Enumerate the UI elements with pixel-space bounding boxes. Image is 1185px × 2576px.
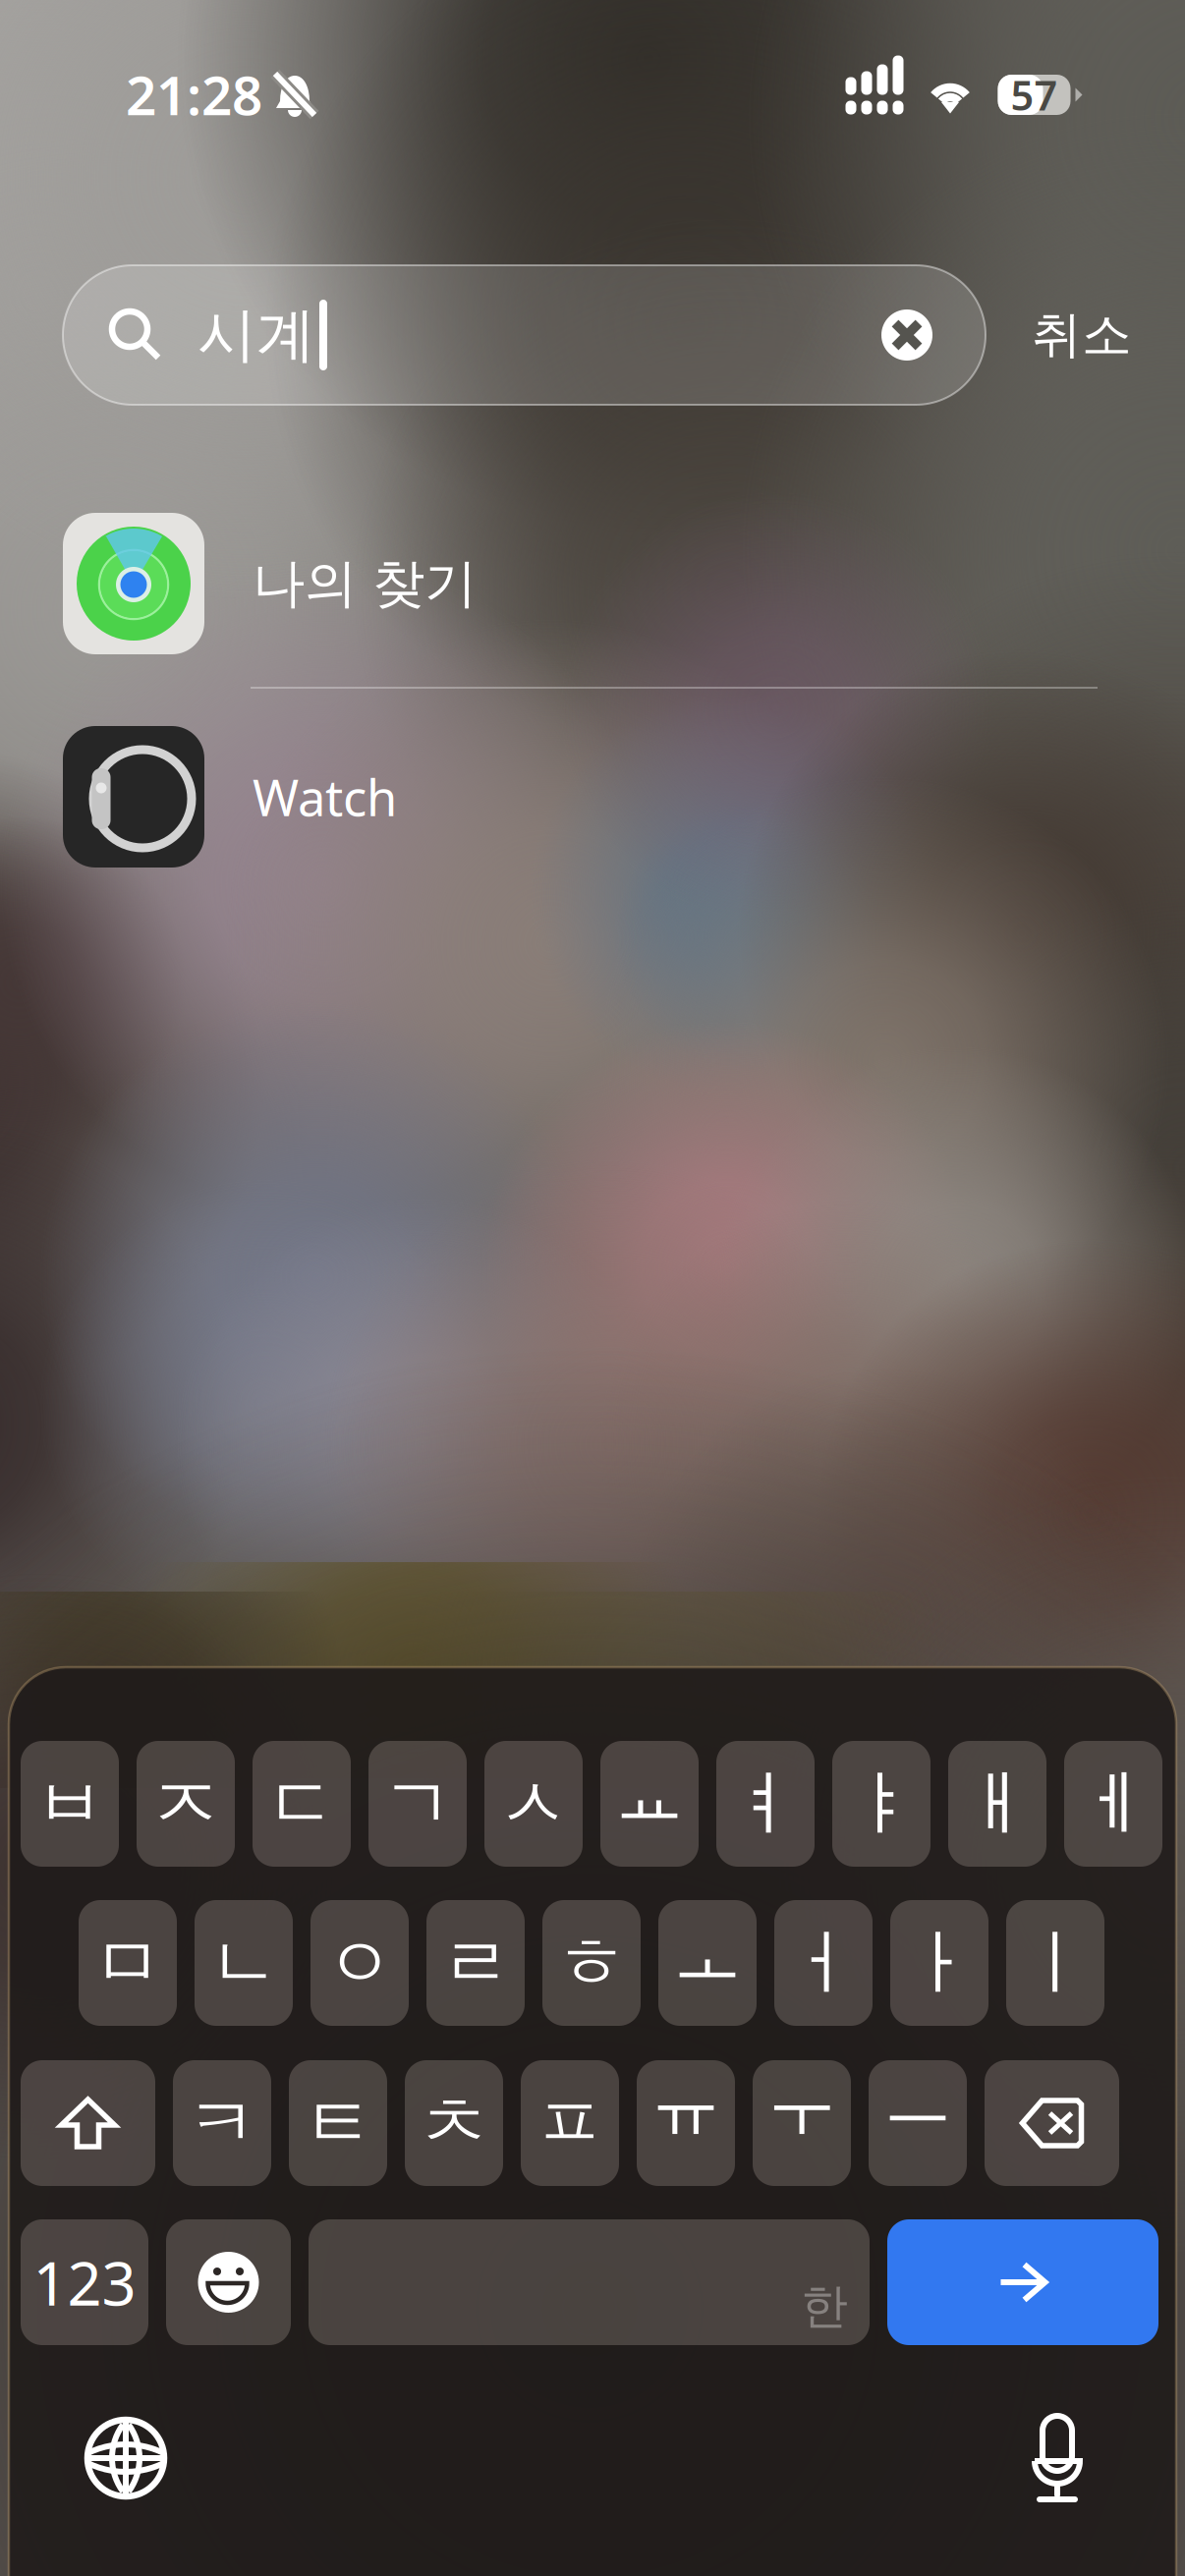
button[interactable]: ㅗ xyxy=(658,1900,757,2026)
button[interactable]: ㅠ xyxy=(637,2060,735,2186)
staticText: 123 xyxy=(33,2242,136,2322)
button[interactable]: ㅐ xyxy=(948,1741,1046,1867)
button[interactable]: Backspace xyxy=(985,2060,1119,2186)
button[interactable]: Emoji keyboard xyxy=(166,2219,291,2345)
button[interactable]: 한 xyxy=(309,2219,870,2345)
staticText: ㅅ xyxy=(498,1760,569,1847)
button[interactable]: ㅁ xyxy=(79,1900,177,2026)
button[interactable]: ㅡ xyxy=(869,2060,967,2186)
staticText: ㅓ xyxy=(788,1920,859,2006)
button[interactable]: ㅑ xyxy=(832,1741,931,1867)
staticText: ㅂ xyxy=(34,1760,105,1847)
button[interactable]: Switch keyboard xyxy=(83,2415,169,2501)
staticText: ㅍ xyxy=(535,2080,605,2167)
staticText: ㅏ xyxy=(904,1920,975,2006)
button[interactable]: ㄱ xyxy=(368,1741,467,1867)
staticText: ㅜ xyxy=(766,2062,837,2149)
button[interactable]: Watch xyxy=(63,709,1185,884)
staticText: ㅑ xyxy=(846,1760,917,1847)
button[interactable]: ㄴ xyxy=(195,1900,293,2026)
button[interactable]: ㅇ xyxy=(310,1900,409,2026)
staticText: 시계 xyxy=(197,299,315,371)
staticText: ㅊ xyxy=(419,2080,489,2167)
button[interactable]: ㅅ xyxy=(484,1741,583,1867)
button[interactable]: ㅛ xyxy=(600,1741,699,1867)
staticText: 취소 xyxy=(1032,304,1132,366)
staticText: 나의 찾기 xyxy=(253,551,477,616)
button[interactable]: ㅔ xyxy=(1064,1741,1162,1867)
button[interactable]: ㅊ xyxy=(405,2060,503,2186)
staticText: ㅗ xyxy=(672,1912,743,1999)
staticText: ㅔ xyxy=(1078,1760,1149,1847)
button[interactable]: ㅋ xyxy=(173,2060,271,2186)
button[interactable]: ㄷ xyxy=(253,1741,351,1867)
staticText: 한 xyxy=(801,2277,848,2335)
staticText: ㅣ xyxy=(1020,1920,1091,2006)
staticText: ㅡ xyxy=(882,2057,953,2144)
button[interactable]: Dictation xyxy=(1028,2413,1087,2503)
staticText: ㅁ xyxy=(92,1920,163,2006)
staticText: ㅕ xyxy=(730,1760,801,1847)
button[interactable]: ㅎ xyxy=(542,1900,641,2026)
button[interactable]: Return xyxy=(887,2219,1158,2345)
staticText: ㅐ xyxy=(962,1760,1033,1847)
staticText: ㅋ xyxy=(187,2080,257,2167)
button[interactable]: ㅏ xyxy=(890,1900,988,2026)
staticText: ㄹ xyxy=(440,1920,511,2006)
staticText: ㅈ xyxy=(150,1760,221,1847)
staticText: ㄷ xyxy=(266,1760,337,1847)
button[interactable]: ㅜ xyxy=(753,2060,851,2186)
staticText: Watch xyxy=(253,764,397,830)
button[interactable]: ㅣ xyxy=(1006,1900,1104,2026)
staticText: ㅇ xyxy=(324,1920,395,2006)
button[interactable]: ㅂ xyxy=(21,1741,119,1867)
staticText: 57 xyxy=(1011,68,1058,122)
button[interactable]: 취소 xyxy=(1003,265,1160,405)
button[interactable]: ㅕ xyxy=(716,1741,815,1867)
button[interactable]: ㅌ xyxy=(289,2060,387,2186)
staticText: ㄴ xyxy=(208,1920,279,2006)
staticText: ㅎ xyxy=(556,1920,627,2006)
staticText: ㄱ xyxy=(382,1760,453,1847)
staticText: ㅌ xyxy=(303,2080,373,2167)
button[interactable]: 나의 찾기 xyxy=(63,496,1185,671)
button[interactable]: ㅈ xyxy=(137,1741,235,1867)
button[interactable]: ㅓ xyxy=(774,1900,873,2026)
staticText: 21:28 xyxy=(126,59,262,130)
button[interactable]: ㄹ xyxy=(426,1900,525,2026)
button[interactable]: 123 xyxy=(21,2219,148,2345)
button[interactable]: Shift xyxy=(21,2060,155,2186)
button[interactable]: ㅍ xyxy=(521,2060,619,2186)
staticText: ㅛ xyxy=(614,1753,685,1839)
staticText: ㅠ xyxy=(650,2062,721,2149)
button[interactable]: Clear text xyxy=(881,309,932,361)
